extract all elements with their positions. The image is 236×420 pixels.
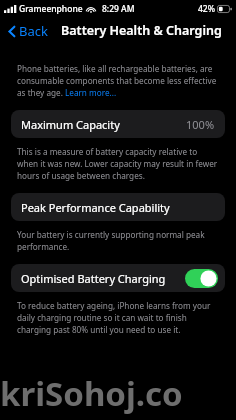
staticText: 8:29 AM bbox=[102, 3, 135, 15]
staticText: To reduce battery ageing, iPhone learns … bbox=[17, 300, 219, 335]
button[interactable]: Peak Performance Capability bbox=[11, 193, 225, 221]
staticText: 42% bbox=[198, 3, 215, 15]
staticText: Back bbox=[19, 22, 48, 40]
staticText: Maximum Capacity bbox=[21, 117, 120, 132]
staticText: This is a measure of battery capacity re… bbox=[17, 146, 219, 181]
staticText: Battery Health & Charging bbox=[61, 22, 222, 39]
staticText: 100% bbox=[186, 117, 215, 132]
button[interactable]: Maximum Capacity bbox=[11, 110, 225, 138]
staticText: Peak Performance Capability bbox=[21, 200, 170, 215]
staticText: Your battery is currently supporting nor… bbox=[17, 229, 219, 252]
button[interactable]: Back bbox=[5, 20, 51, 42]
staticText: Phone batteries, like all rechargeable b… bbox=[17, 63, 219, 98]
staticText: Grameenphone bbox=[19, 3, 83, 15]
staticText: Optimised Battery Charging bbox=[21, 271, 166, 286]
staticText: kriSohoj.co bbox=[0, 371, 183, 416]
button[interactable]: Optimised Battery Charging toggle, on bbox=[185, 269, 218, 288]
button[interactable]: Optimised Battery Charging bbox=[11, 264, 225, 292]
